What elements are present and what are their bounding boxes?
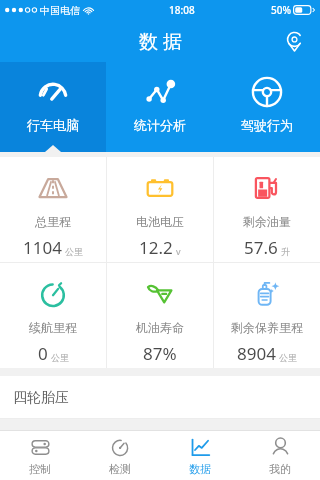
staticText: 电池电压 <box>136 214 184 229</box>
staticText: 1104 <box>23 236 62 259</box>
button[interactable]: 机油寿命 <box>107 263 213 368</box>
button[interactable]: 续航里程 <box>0 263 106 368</box>
staticText: 驾驶行为 <box>241 117 293 133</box>
staticText: 机油寿命 <box>136 320 184 335</box>
staticText: 剩余保养里程 <box>231 320 303 335</box>
staticText: 四轮胎压 <box>13 389 69 407</box>
button[interactable]: 驾驶行为 <box>213 62 320 152</box>
staticText: 我的 <box>269 462 291 476</box>
staticText: 8904 <box>237 342 276 365</box>
staticText: 57.6 <box>244 236 278 259</box>
button[interactable]: 剩余油量 <box>214 157 320 262</box>
staticText: 总里程 <box>35 214 71 229</box>
staticText: 检测 <box>109 462 131 476</box>
button[interactable]: 我的 <box>240 431 320 480</box>
staticText: 公里 <box>279 352 297 363</box>
staticText: v <box>176 245 181 257</box>
button[interactable]: 控制 <box>0 431 80 480</box>
button[interactable]: 四轮胎压 <box>0 376 320 419</box>
staticText: 数 据 <box>139 28 182 54</box>
staticText: 行车电脑 <box>27 117 79 133</box>
staticText: 18:08 <box>169 3 195 17</box>
staticText: 剩余油量 <box>243 214 291 229</box>
button[interactable]: 统计分析 <box>106 62 213 152</box>
button[interactable]: 行车电脑 <box>0 62 106 152</box>
button[interactable]: 剩余保养里程 <box>214 263 320 368</box>
staticText: 数据 <box>189 462 211 476</box>
staticText: 续航里程 <box>29 320 77 335</box>
staticText: 统计分析 <box>134 117 186 133</box>
staticText: 控制 <box>29 462 51 476</box>
staticText: 公里 <box>65 246 83 257</box>
button[interactable]: 数据 <box>160 431 240 480</box>
staticText: 87% <box>143 342 177 365</box>
staticText: 中国电信 <box>40 4 80 17</box>
button[interactable]: 检测 <box>80 431 160 480</box>
staticText: 升 <box>281 246 290 257</box>
button[interactable]: 总里程 <box>0 157 106 262</box>
staticText: 50% <box>271 3 291 17</box>
staticText: 公里 <box>51 352 69 363</box>
button[interactable]: Location <box>278 25 310 57</box>
staticText: 0 <box>38 342 48 365</box>
staticText: 12.2 <box>139 236 173 259</box>
button[interactable]: 电池电压 <box>107 157 213 262</box>
